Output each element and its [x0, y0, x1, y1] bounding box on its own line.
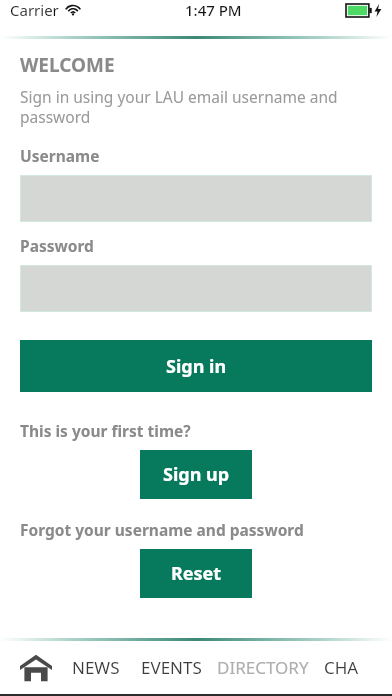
staticText: Reset: [171, 561, 222, 586]
staticText: NEWS: [72, 656, 120, 679]
staticText: CHA: [324, 656, 359, 679]
staticText: Username: [20, 145, 100, 166]
button[interactable]: Reset: [140, 549, 252, 598]
button[interactable]: Text input: [20, 265, 372, 312]
button[interactable]: EVENTS: [141, 641, 202, 694]
button[interactable]: Sign up: [140, 450, 252, 499]
button[interactable]: CHA: [324, 641, 359, 694]
staticText: Sign up: [163, 462, 230, 487]
staticText: Carrier: [10, 0, 59, 20]
staticText: Sign in: [166, 354, 227, 379]
button[interactable]: Home: [0, 641, 72, 694]
staticText: This is your first time?: [20, 420, 191, 441]
button[interactable]: DIRECTORY: [217, 641, 309, 694]
button[interactable]: Text input: [20, 175, 372, 222]
button[interactable]: NEWS: [72, 641, 120, 694]
staticText: WELCOME: [20, 52, 115, 78]
button[interactable]: Sign in: [20, 340, 372, 392]
staticText: EVENTS: [141, 656, 202, 679]
staticText: DIRECTORY: [217, 656, 309, 679]
staticText: Sign in using your LAU email username an…: [20, 86, 372, 128]
staticText: 1:47 PM: [185, 0, 242, 20]
staticText: Password: [20, 235, 94, 256]
staticText: Forgot your username and password: [20, 519, 304, 540]
